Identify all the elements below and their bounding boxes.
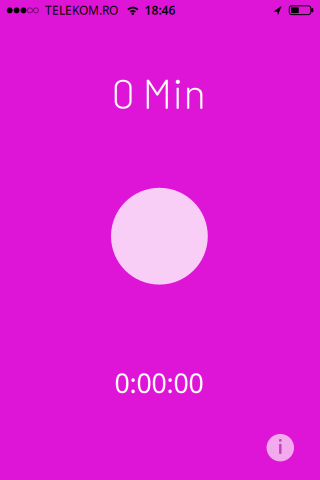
button[interactable]: Start xyxy=(111,188,208,285)
staticText: TELEKOM.RO xyxy=(45,2,118,18)
button[interactable]: Info xyxy=(267,434,294,461)
staticText: 0:00:00 xyxy=(114,365,203,400)
staticText: 18:46 xyxy=(144,2,175,18)
staticText: 0 Min xyxy=(111,67,205,117)
